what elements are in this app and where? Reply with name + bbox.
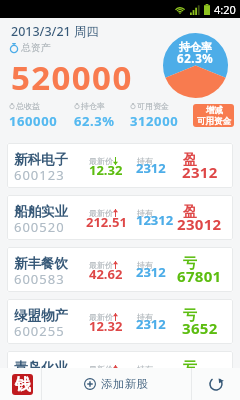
staticText: 持有: [137, 156, 153, 166]
staticText: 盈: [183, 203, 197, 221]
staticText: 212.51: [86, 213, 127, 231]
staticText: 600520: [14, 218, 65, 236]
staticText: 可用资金: [197, 116, 231, 127]
button[interactable]: 船舶实业: [7, 195, 233, 240]
staticText: 增减: [206, 105, 223, 116]
staticText: 新丰餐饮: [14, 255, 68, 272]
staticText: 12.32: [89, 161, 123, 179]
button[interactable]: Refresh: [192, 368, 240, 400]
staticText: 持仓率: [81, 101, 105, 111]
staticText: 最新价: [89, 208, 113, 218]
button[interactable]: 添加新股: [42, 368, 191, 400]
button[interactable]: App home: [0, 368, 41, 400]
staticText: 亏: [183, 307, 197, 325]
staticText: 160000: [9, 112, 58, 130]
staticText: 持有: [137, 208, 153, 218]
button[interactable]: 绿盟物产: [7, 299, 233, 344]
staticText: 600123: [14, 166, 65, 184]
staticText: 12.32: [89, 317, 123, 335]
staticText: 600583: [14, 270, 65, 288]
staticText: 2312: [136, 159, 166, 177]
staticText: 持仓率: [179, 40, 212, 54]
staticText: 最新价: [89, 156, 113, 166]
button[interactable]: 新丰餐饮: [7, 247, 233, 292]
staticText: 3652: [182, 370, 218, 390]
staticText: 67801: [177, 266, 222, 286]
staticText: 520000: [11, 55, 133, 100]
staticText: 最新价: [89, 312, 113, 322]
staticText: 总收益: [16, 101, 40, 111]
staticText: 42.62: [89, 265, 123, 283]
staticText: 4:20: [214, 2, 236, 17]
staticText: 最新价: [89, 260, 113, 270]
staticText: 600255: [14, 322, 65, 340]
staticText: 最新价: [89, 364, 113, 374]
staticText: 23012: [177, 214, 222, 234]
staticText: 2312: [136, 367, 166, 385]
staticText: 62.3%: [74, 112, 115, 130]
staticText: 盈: [183, 151, 197, 169]
button[interactable]: 青岛化业: [7, 351, 233, 396]
staticText: 600199: [14, 374, 65, 392]
staticText: 12312: [136, 211, 174, 229]
staticText: 3652: [182, 318, 218, 338]
staticText: 2013/3/21 周四: [11, 23, 99, 40]
staticText: 总资产: [21, 41, 51, 54]
staticText: 2312: [136, 263, 166, 281]
staticText: 船舶实业: [14, 203, 68, 220]
button[interactable]: 新科电子: [7, 143, 233, 188]
staticText: 持有: [137, 364, 153, 374]
staticText: 钱: [15, 375, 31, 395]
staticText: 持有: [137, 260, 153, 270]
staticText: 2312: [182, 162, 218, 182]
staticText: 添加新股: [101, 377, 149, 391]
staticText: 青岛化业: [14, 359, 68, 376]
staticText: 312000: [130, 112, 179, 130]
staticText: 新科电子: [14, 151, 68, 168]
button[interactable]: 增减: [193, 104, 234, 127]
staticText: 亏: [183, 359, 197, 377]
staticText: 62.3%: [177, 51, 214, 67]
staticText: 亏: [183, 255, 197, 273]
staticText: 12.32: [89, 369, 123, 387]
staticText: 持有: [137, 312, 153, 322]
staticText: 2312: [136, 315, 166, 333]
staticText: 绿盟物产: [14, 307, 68, 324]
staticText: 可用资金: [137, 101, 169, 111]
